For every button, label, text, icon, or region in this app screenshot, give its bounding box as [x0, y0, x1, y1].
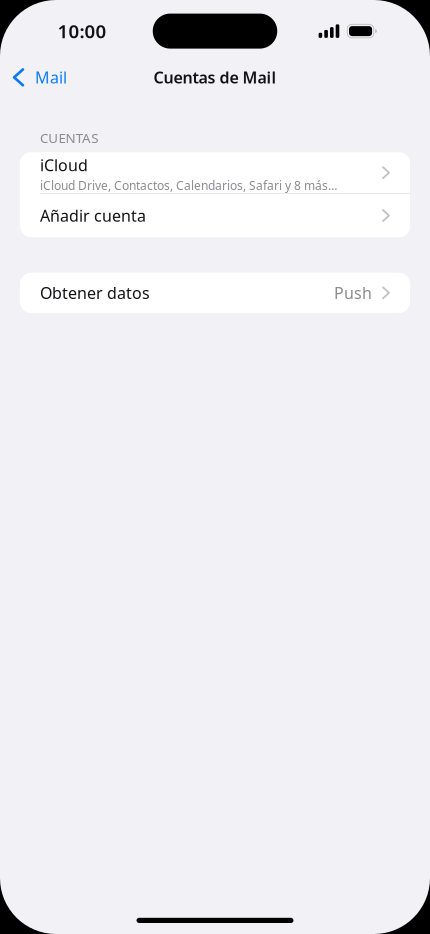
- staticText: Añadir cuenta: [40, 205, 146, 226]
- staticText: Obtener datos: [40, 282, 150, 303]
- button[interactable]: Mail: [7, 60, 73, 95]
- staticText: iCloud: [40, 154, 88, 176]
- button[interactable]: Obtener datos: [0, 273, 430, 313]
- staticText: 10:00: [57, 19, 106, 43]
- staticText: CUENTAS: [40, 129, 98, 147]
- staticText: Mail: [35, 67, 67, 88]
- staticText: iCloud Drive, Contactos, Calendarios, Sa…: [40, 177, 337, 193]
- button[interactable]: Añadir cuenta: [20, 194, 410, 237]
- staticText: Cuentas de Mail: [153, 67, 276, 88]
- staticText: Push: [334, 282, 372, 303]
- button[interactable]: iCloud: [20, 152, 410, 193]
